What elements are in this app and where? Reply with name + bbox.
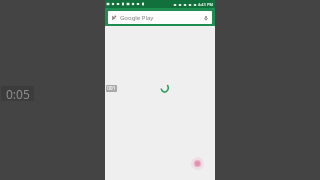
staticText: 0:05 — [6, 86, 30, 101]
staticText: Google Play — [120, 14, 154, 22]
staticText: 001 — [107, 85, 116, 92]
button[interactable]: Google Play — [108, 11, 212, 24]
button[interactable]: Voice search — [202, 14, 209, 21]
staticText: 4:41 PM — [198, 2, 214, 7]
